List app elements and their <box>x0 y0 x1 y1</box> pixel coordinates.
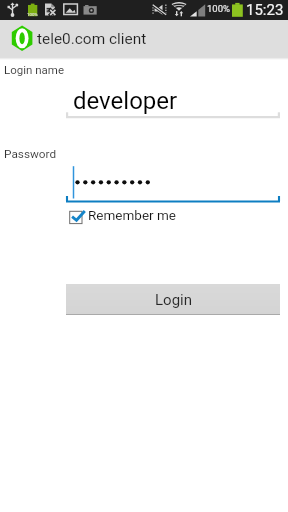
button[interactable]: developer <box>66 84 280 118</box>
button[interactable]: Login <box>66 284 280 315</box>
staticText: 100% <box>207 3 230 14</box>
staticText: Password <box>4 147 57 161</box>
button[interactable]: Remember me <box>66 205 176 225</box>
staticText: Login <box>155 291 192 309</box>
button[interactable] <box>66 164 280 201</box>
staticText: tele0.com client <box>37 30 147 48</box>
staticText: 15:23 <box>246 1 284 19</box>
staticText: 100% <box>27 12 38 17</box>
staticText: Remember me <box>88 207 176 223</box>
staticText: Login name <box>4 63 64 76</box>
staticText: developer <box>73 87 178 115</box>
